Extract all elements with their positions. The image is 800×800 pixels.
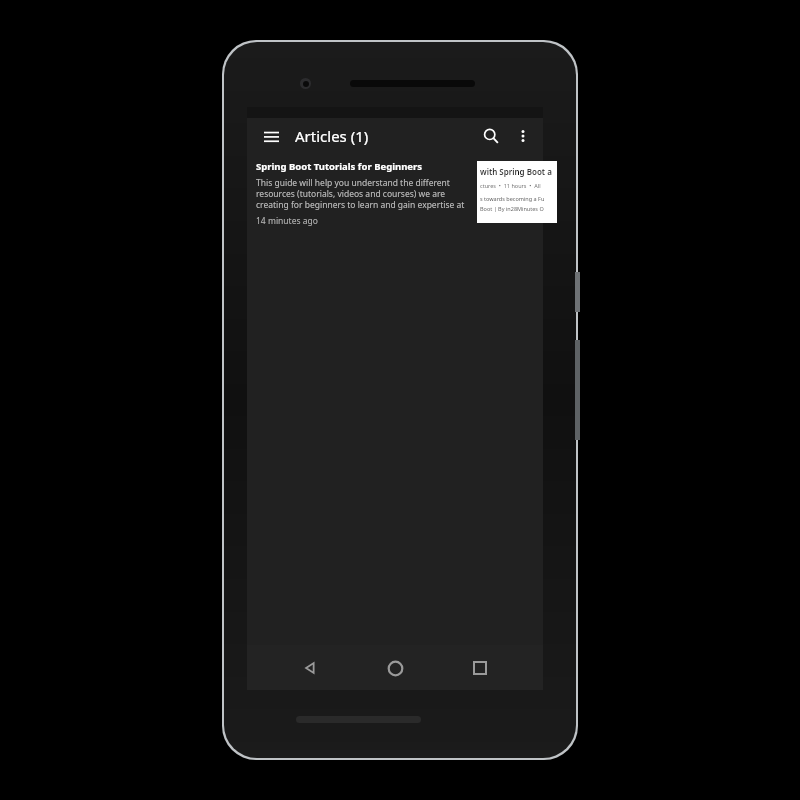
button[interactable]: Back <box>288 646 332 690</box>
button[interactable]: More options <box>507 120 539 152</box>
staticText: Boot | By in28Minutes O <box>480 205 544 212</box>
staticText: with Spring Boot a <box>480 166 552 177</box>
button[interactable]: Search <box>475 120 507 152</box>
button[interactable]: Recent apps <box>458 646 502 690</box>
staticText: ctures • 11 hours • All <box>480 182 541 189</box>
staticText: This guide will help you understand the … <box>256 177 474 210</box>
staticText: Spring Boot Tutorials for Beginners <box>256 160 423 173</box>
button[interactable]: Home <box>373 646 417 690</box>
button[interactable]: with Spring Boot a <box>247 154 543 226</box>
button[interactable]: Open navigation menu <box>256 121 286 151</box>
staticText: 14 minutes ago <box>256 215 318 226</box>
staticText: Articles (1) <box>295 126 369 146</box>
staticText: s towards becoming a Fu <box>480 195 545 202</box>
